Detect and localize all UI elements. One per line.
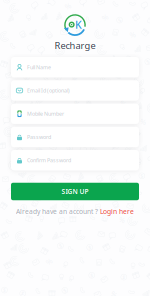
staticText: $	[68, 143, 72, 152]
staticText: %	[119, 97, 127, 110]
staticText: $	[22, 203, 26, 212]
staticText: Login here	[100, 207, 134, 216]
staticText: %	[70, 73, 78, 85]
staticText: $	[25, 72, 29, 81]
staticText: K	[75, 17, 82, 32]
button[interactable]: Login here	[100, 207, 134, 216]
staticText: %	[35, 144, 43, 156]
staticText: %	[73, 97, 81, 110]
staticText: Already have an account ?	[16, 207, 98, 216]
staticText: Recharge	[54, 39, 95, 52]
staticText: Password	[27, 133, 51, 141]
staticText: Full Name	[27, 64, 51, 71]
button[interactable]: SIGN UP	[11, 183, 139, 200]
staticText: SIGN UP	[61, 187, 88, 196]
staticText: Confirm Password	[27, 157, 71, 164]
staticText: Email Id (optional)	[27, 87, 70, 94]
staticText: Mobile Number	[27, 110, 64, 117]
staticText: %	[113, 113, 121, 126]
